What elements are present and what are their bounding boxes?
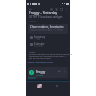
button[interactable]: Chase matters, Secretaries meeting [28, 24, 68, 34]
staticText: GITHTP-baobaoi-widget [29, 15, 63, 19]
button[interactable]: Archive [49, 7, 53, 11]
staticText: Submitted for sale • 7 Shen [30, 28, 63, 32]
button[interactable]: Delete [54, 7, 58, 11]
button[interactable]: Estimate [28, 42, 68, 48]
staticText: Estimate [34, 42, 45, 46]
button[interactable]: F [28, 67, 68, 78]
staticText: for all of your help. [29, 56, 52, 59]
staticText: Note [29, 50, 35, 53]
staticText: Secretary [34, 35, 46, 39]
staticText: Inbox [29, 19, 36, 22]
staticText: 7 MB [34, 37, 41, 41]
button[interactable]: Back [28, 7, 32, 11]
staticText: F [31, 71, 33, 75]
staticText: Froggy – Yesterday [29, 11, 58, 15]
button[interactable]: Secretary [28, 35, 68, 41]
button[interactable]: Reply [58, 70, 61, 73]
staticText: Froggy [36, 70, 46, 74]
staticText: to me [36, 73, 43, 76]
staticText: Please review the attached summary befor… [29, 52, 73, 55]
staticText: Chase matters, Secretaries meeting [30, 25, 68, 29]
button[interactable]: More options [63, 70, 66, 73]
button[interactable]: More options [64, 7, 68, 11]
staticText: https://example.com/quarterly-report [28, 60, 56, 63]
staticText: meeting on Monday morning — thanks again [29, 54, 73, 57]
button[interactable]: Mark unread [59, 7, 63, 11]
button[interactable]: Photo [37, 84, 42, 88]
button[interactable]: https://example.com/quarterly-report [28, 60, 56, 63]
staticText: 4.2 MB [34, 44, 43, 48]
